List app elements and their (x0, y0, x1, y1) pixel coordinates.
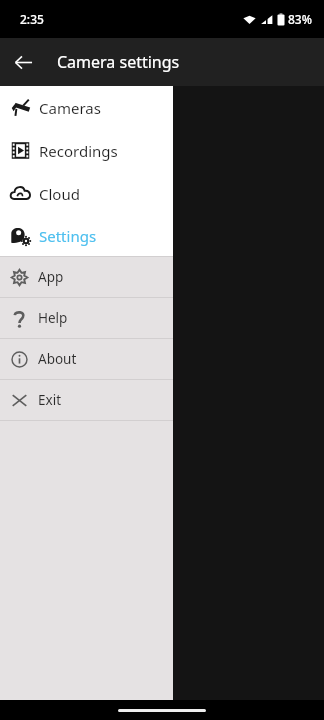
staticText: Recordings (39, 141, 118, 161)
button[interactable]: Settings (0, 215, 173, 256)
button[interactable]: Back (6, 45, 40, 79)
staticText: Help (38, 309, 68, 327)
staticText: Settings (39, 226, 97, 246)
button[interactable]: Help (0, 298, 173, 338)
staticText: Exit (38, 391, 62, 409)
staticText: Camera settings (57, 51, 180, 73)
staticText: Cloud (39, 184, 80, 204)
staticText: 2:35 (20, 11, 44, 27)
staticText: 83% (288, 11, 312, 27)
button[interactable]: Cloud (0, 172, 173, 215)
button[interactable]: Cameras (0, 86, 173, 129)
button[interactable]: Exit (0, 380, 173, 420)
button[interactable]: About (0, 339, 173, 379)
staticText: App (38, 268, 64, 286)
staticText: Cameras (39, 98, 101, 118)
button[interactable]: Recordings (0, 129, 173, 172)
staticText: About (38, 350, 77, 368)
button[interactable]: App (0, 257, 173, 297)
